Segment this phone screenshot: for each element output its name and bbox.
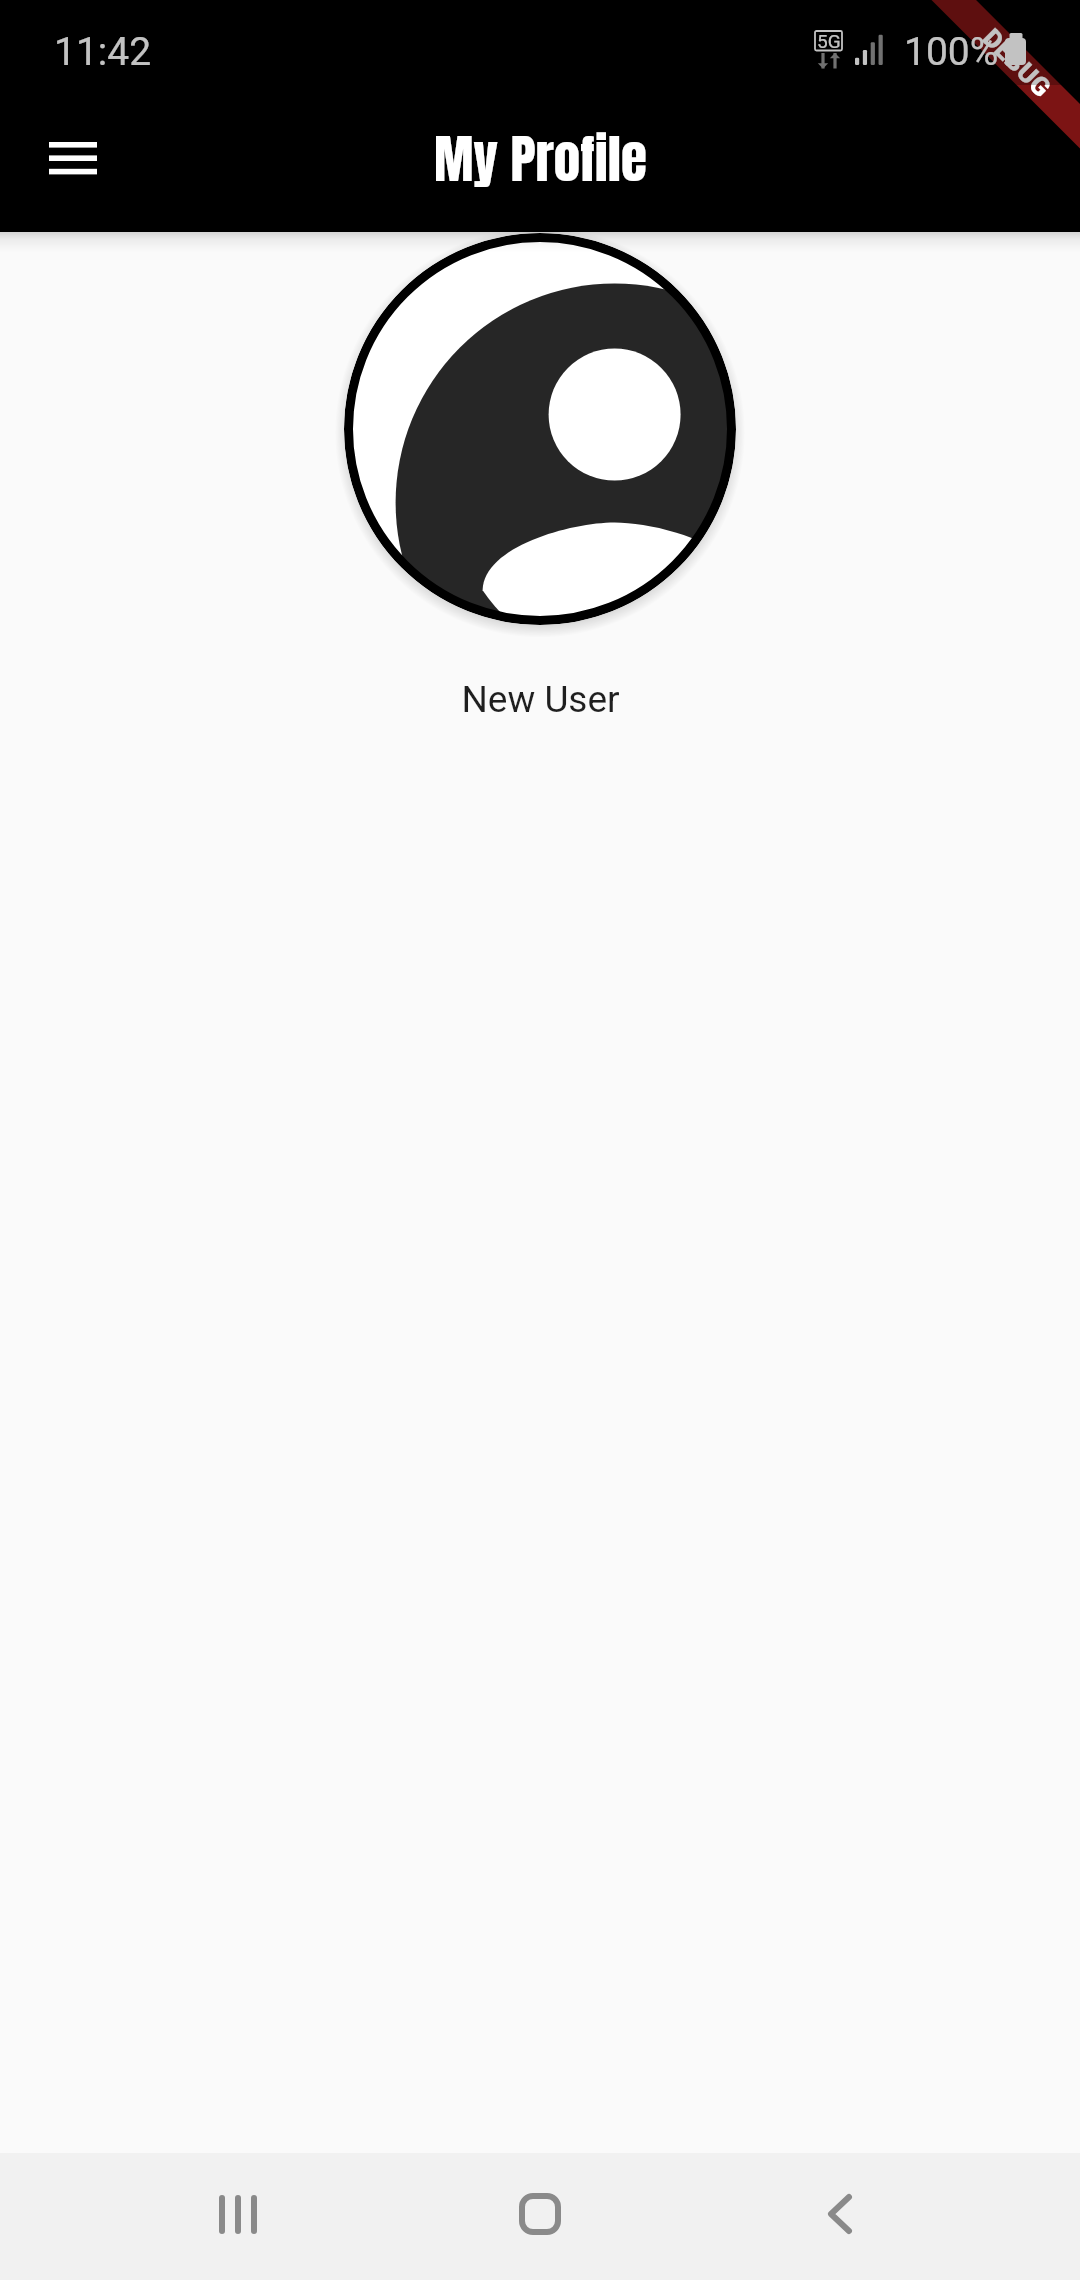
- staticText: 5G: [817, 30, 841, 52]
- button[interactable]: Profile photo: [344, 233, 736, 625]
- button[interactable]: Home: [480, 2154, 600, 2274]
- staticText: 11:42: [54, 29, 152, 75]
- button[interactable]: Back: [780, 2154, 900, 2274]
- button[interactable]: Recent apps: [178, 2154, 298, 2274]
- button[interactable]: Open navigation menu: [21, 106, 125, 210]
- staticText: 100%: [904, 29, 999, 75]
- staticText: My Profile: [434, 119, 647, 199]
- staticText: DEBUG: [977, 23, 1057, 103]
- staticText: New User: [461, 678, 620, 721]
